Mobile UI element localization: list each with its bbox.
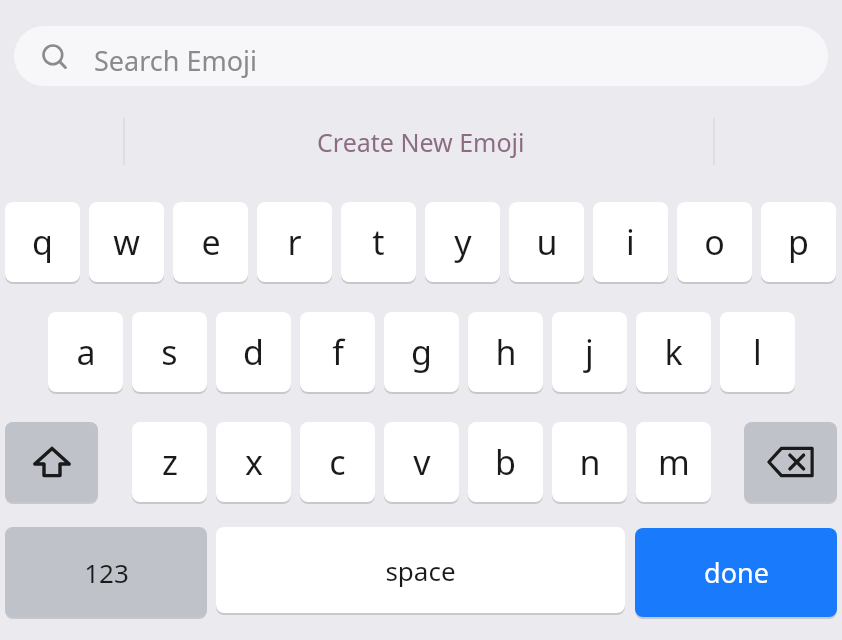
staticText: l (753, 329, 762, 375)
staticText: t (372, 219, 385, 265)
button[interactable]: b (468, 422, 543, 502)
staticText: c (329, 439, 346, 485)
button[interactable]: z (132, 422, 207, 502)
staticText: o (704, 219, 725, 265)
staticText: space (385, 553, 456, 588)
staticText: z (162, 439, 178, 485)
staticText: x (245, 439, 263, 485)
staticText: b (495, 439, 516, 485)
staticText: w (113, 219, 140, 265)
staticText: u (536, 219, 558, 265)
staticText: v (413, 439, 431, 485)
staticText: r (287, 219, 302, 265)
button[interactable]: n (552, 422, 627, 502)
staticText: k (664, 329, 683, 375)
button[interactable]: k (636, 312, 711, 392)
button[interactable]: o (677, 202, 752, 282)
button[interactable]: u (509, 202, 584, 282)
staticText: n (579, 439, 601, 485)
button[interactable]: 123 (5, 527, 207, 617)
button[interactable]: d (216, 312, 291, 392)
button[interactable]: Search Emoji (14, 26, 828, 86)
staticText: 123 (84, 555, 129, 590)
button[interactable]: space (216, 527, 625, 613)
button[interactable]: Create New Emoji (130, 118, 712, 165)
button[interactable]: y (425, 202, 500, 282)
button[interactable]: v (384, 422, 459, 502)
button[interactable]: l (720, 312, 795, 392)
button[interactable]: Shift (5, 422, 98, 502)
staticText: q (32, 219, 53, 265)
staticText: e (201, 219, 221, 265)
staticText: a (76, 329, 96, 375)
button[interactable]: f (300, 312, 375, 392)
staticText: g (411, 329, 432, 375)
staticText: i (626, 219, 635, 265)
button[interactable]: h (468, 312, 543, 392)
staticText: d (243, 329, 264, 375)
button[interactable]: q (5, 202, 80, 282)
button[interactable]: a (48, 312, 123, 392)
staticText: Search Emoji (94, 42, 257, 79)
button[interactable]: Backspace (744, 422, 837, 502)
staticText: h (495, 329, 517, 375)
button[interactable]: w (89, 202, 164, 282)
staticText: done (704, 554, 769, 591)
button[interactable]: j (552, 312, 627, 392)
button[interactable]: g (384, 312, 459, 392)
button[interactable]: i (593, 202, 668, 282)
staticText: m (658, 439, 690, 485)
staticText: j (585, 329, 594, 375)
button[interactable]: r (257, 202, 332, 282)
button[interactable]: p (761, 202, 836, 282)
button[interactable]: x (216, 422, 291, 502)
button[interactable]: s (132, 312, 207, 392)
button[interactable]: m (636, 422, 711, 502)
button[interactable]: done (635, 528, 837, 617)
button[interactable]: e (173, 202, 248, 282)
staticText: s (161, 329, 178, 375)
staticText: p (788, 219, 809, 265)
staticText: Create New Emoji (317, 125, 525, 159)
staticText: f (332, 329, 344, 375)
staticText: y (454, 219, 472, 265)
button[interactable]: c (300, 422, 375, 502)
button[interactable]: t (341, 202, 416, 282)
